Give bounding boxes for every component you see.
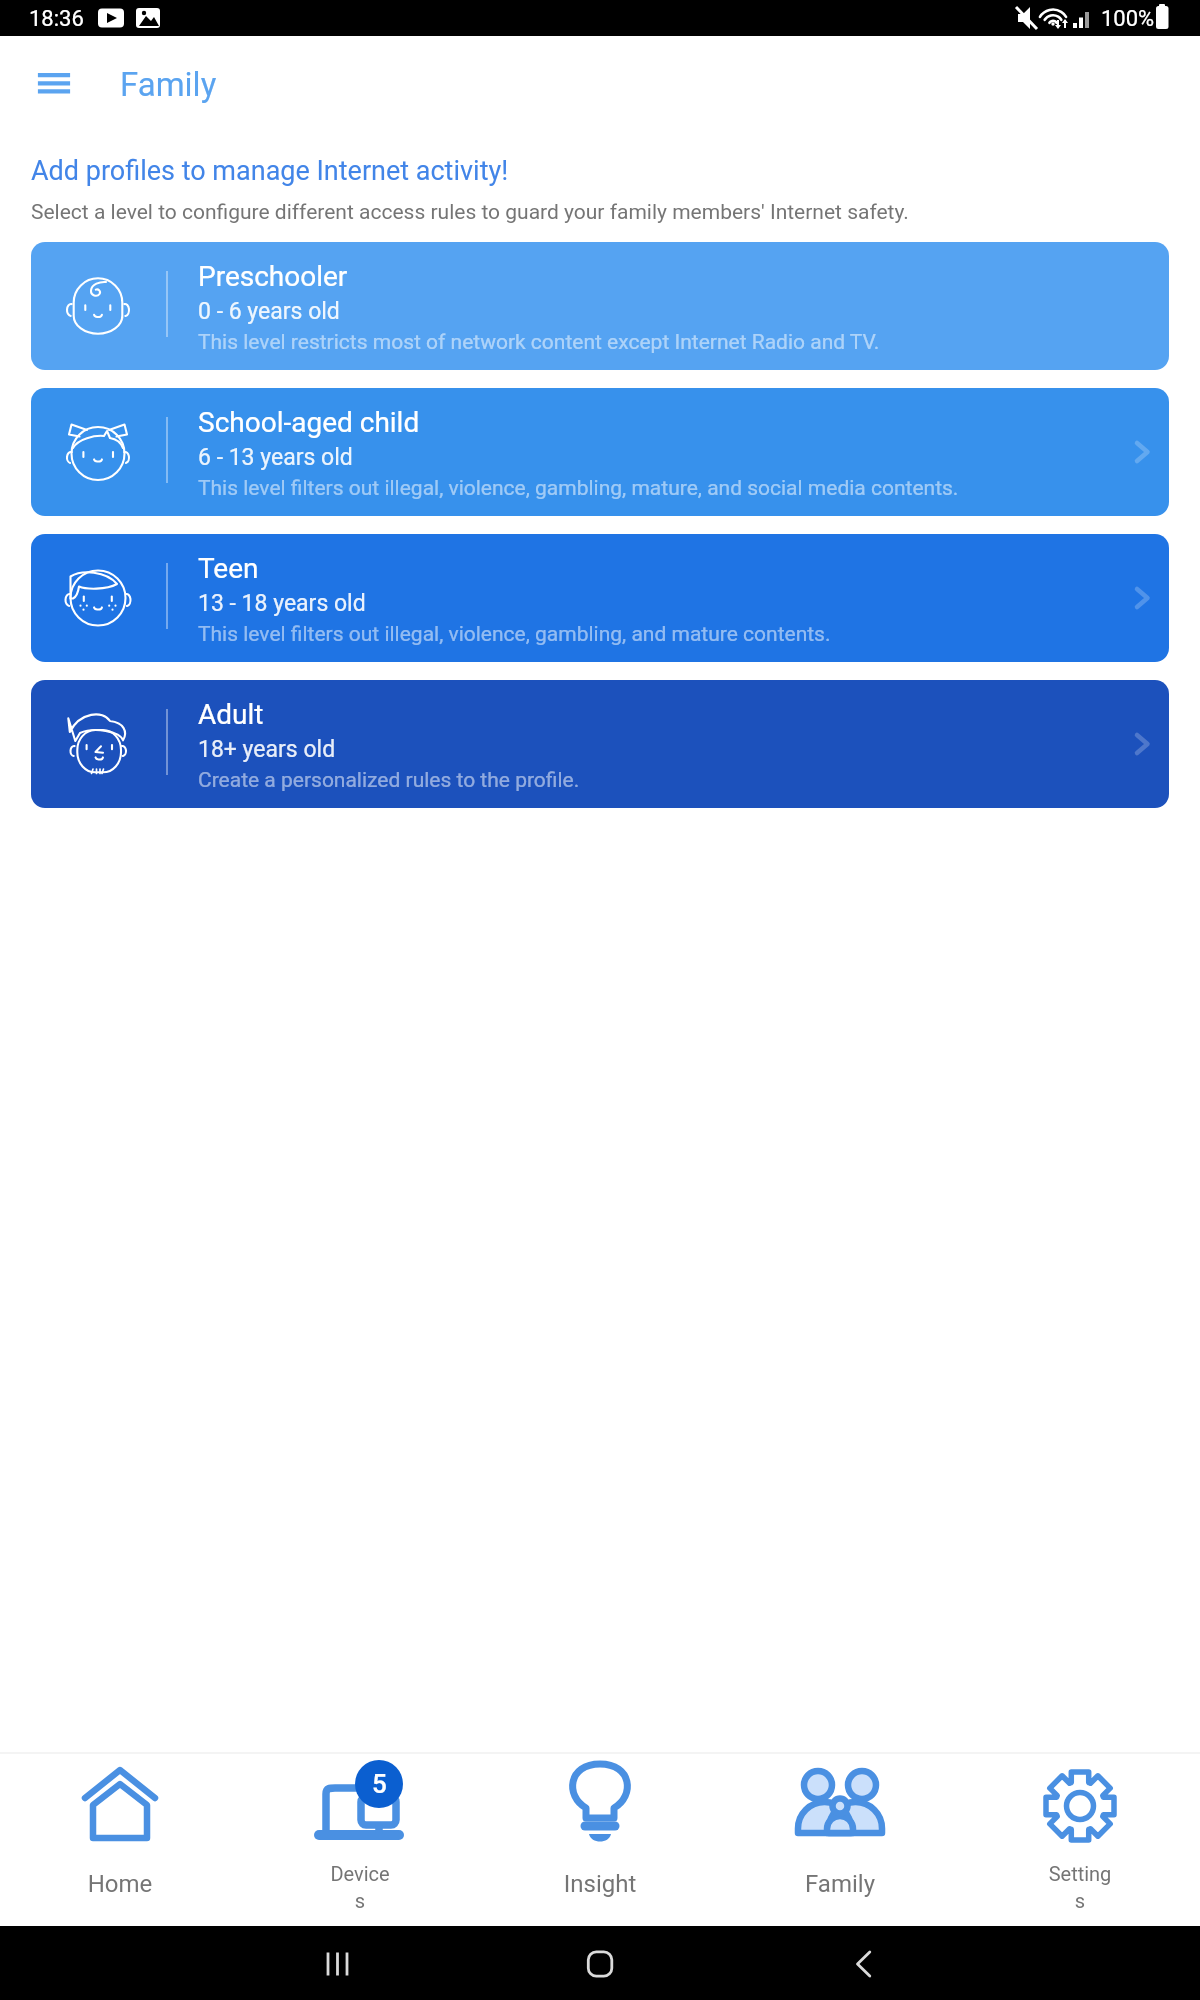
staticText: Preschooler [198, 260, 348, 293]
button[interactable]: Family [720, 1752, 960, 1926]
staticText: Settings [1048, 1862, 1112, 1913]
staticText: This level filters out illegal, violence… [198, 622, 831, 647]
staticText: 6 - 13 years old [198, 444, 353, 471]
staticText: Create a personalized rules to the profi… [198, 768, 580, 793]
button[interactable]: Adult [31, 680, 1169, 808]
button[interactable]: Home [570, 1926, 630, 2000]
button[interactable]: Teen [31, 534, 1169, 662]
staticText: Insight [535, 1870, 665, 1898]
button[interactable]: School-aged child [31, 388, 1169, 516]
staticText: Home [55, 1870, 185, 1898]
staticText: 13 - 18 years old [198, 590, 366, 617]
staticText: 18+ years old [198, 736, 336, 763]
staticText: Adult [198, 698, 264, 731]
button[interactable]: Open navigation menu [20, 49, 88, 117]
staticText: Family [775, 1870, 905, 1898]
staticText: 100% [1101, 6, 1155, 32]
staticText: 18:36 [29, 6, 84, 32]
staticText: 0 - 6 years old [198, 298, 340, 325]
button[interactable]: Recent apps [308, 1926, 368, 2000]
staticText: Select a level to configure different ac… [31, 200, 909, 225]
button[interactable]: Home [0, 1752, 240, 1926]
staticText: This level restricts most of network con… [198, 330, 880, 355]
staticText: 5 [372, 1769, 387, 1799]
staticText: School-aged child [198, 406, 420, 439]
staticText: Devices [328, 1862, 392, 1913]
staticText: Teen [198, 552, 259, 585]
button[interactable]: Preschooler [31, 242, 1169, 370]
staticText: Add profiles to manage Internet activity… [31, 155, 509, 187]
staticText: This level filters out illegal, violence… [198, 476, 959, 501]
button[interactable]: Insight [480, 1752, 720, 1926]
button[interactable]: Settings [960, 1752, 1200, 1926]
staticText: Family [120, 65, 217, 104]
button[interactable]: 5 [240, 1752, 480, 1926]
button[interactable]: Back [834, 1926, 894, 2000]
